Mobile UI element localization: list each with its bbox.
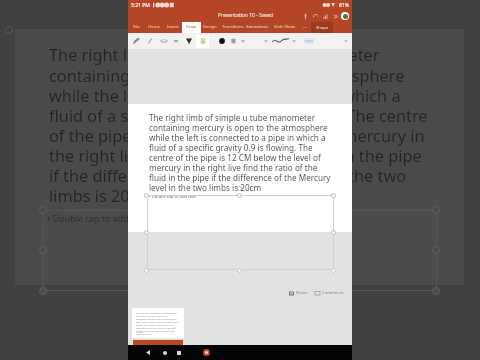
staticText: The right limb of simple u tube manomete…	[149, 112, 333, 193]
button[interactable]: Comments	[314, 290, 345, 296]
button[interactable]: Present	[320, 11, 330, 21]
button[interactable]: Shape	[311, 22, 333, 33]
staticText: File	[133, 24, 140, 30]
staticText: ···	[303, 24, 308, 31]
button[interactable]: Selected pen	[184, 36, 194, 46]
button[interactable]: Recent apps	[172, 345, 185, 360]
staticText: Shape	[316, 25, 329, 31]
staticText: Comments	[322, 290, 344, 296]
staticText: Insert	[167, 24, 179, 30]
staticText: Presentation 10 - Saved	[218, 12, 274, 19]
button[interactable]: Highlighter	[198, 36, 208, 46]
button[interactable]: Ink thickness	[229, 36, 239, 46]
button[interactable]: Draw	[183, 21, 199, 33]
button[interactable]: Back	[141, 345, 154, 360]
button[interactable]: Shape options	[289, 36, 299, 46]
button[interactable]: File	[128, 21, 144, 33]
button[interactable]: Undo	[310, 11, 320, 21]
button[interactable]: Screen recorder	[200, 345, 213, 360]
button[interactable]: Eraser	[159, 36, 169, 46]
button[interactable]: Transitions	[214, 21, 251, 33]
button[interactable]: The right limb of simple u tube manomete…	[132, 308, 184, 338]
button[interactable]: Pen	[131, 36, 141, 46]
staticText: Notes	[296, 290, 308, 296]
staticText: Slide Show	[274, 24, 296, 30]
staticText: Design	[203, 24, 217, 30]
staticText: The right limb of simple u tube manomete…	[136, 312, 179, 336]
button[interactable]: Ruler	[302, 36, 316, 46]
staticText: Animations	[246, 24, 269, 30]
staticText: Transitions	[222, 24, 244, 30]
button[interactable]: Share	[330, 11, 340, 21]
button[interactable]: Microphone	[300, 11, 310, 21]
staticText: The right limb of simple u tube manomete…	[49, 44, 428, 207]
staticText: • Double	[136, 331, 143, 333]
button[interactable]: Insert	[162, 21, 184, 33]
button[interactable]: Thickness options	[238, 36, 248, 46]
button[interactable]: Ink to shape	[272, 36, 289, 46]
staticText: • Double tap to add text	[47, 212, 148, 224]
button[interactable]: Pen options	[171, 36, 181, 46]
button[interactable]: Pen 2	[145, 36, 155, 46]
button[interactable]: Slide Show	[268, 21, 302, 33]
staticText: Draw	[186, 24, 197, 30]
staticText: 81%	[339, 2, 349, 9]
button[interactable]: More options	[341, 36, 351, 46]
button[interactable]: Animations	[240, 21, 274, 33]
button[interactable]: Account	[341, 12, 349, 20]
staticText: • Double tap to add text	[149, 194, 196, 200]
button[interactable]: Home	[158, 345, 171, 360]
button[interactable]: Home	[146, 21, 162, 33]
button[interactable]: Ink colour	[217, 36, 227, 46]
staticText: Home	[148, 24, 160, 30]
button[interactable]: More tabs	[299, 21, 311, 33]
staticText: 5:21 PM	[131, 2, 150, 9]
button[interactable]: Notes	[288, 290, 309, 296]
button[interactable]: Design	[199, 21, 221, 33]
button[interactable]: Ink options	[261, 36, 271, 46]
